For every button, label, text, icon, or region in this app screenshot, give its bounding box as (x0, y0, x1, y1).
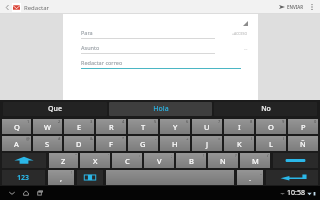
button[interactable]: Que (3, 102, 107, 116)
staticText: ! (203, 153, 205, 158)
button[interactable]: Espacio (106, 170, 234, 185)
staticText: ? (235, 153, 237, 158)
button[interactable]: Recientes (33, 186, 47, 200)
button[interactable]: Cambiar teclado (77, 170, 103, 185)
staticText: A (14, 139, 19, 149)
button[interactable]: Redactar correo (81, 59, 248, 69)
staticText: ENVIAR (287, 4, 304, 10)
button[interactable]: T (128, 119, 158, 134)
button[interactable]: P (288, 119, 318, 134)
staticText: 0 (314, 119, 317, 124)
staticText: G (140, 139, 146, 149)
button[interactable]: Mayúsculas (2, 153, 46, 168)
button[interactable]: Q (2, 119, 31, 134)
staticText: _ (260, 170, 262, 175)
button[interactable]: E (64, 119, 94, 134)
staticText: , (60, 173, 63, 183)
staticText: ( (251, 136, 253, 141)
staticText: 9 (282, 119, 285, 124)
button[interactable]: Asunto (81, 44, 248, 54)
staticText: Asunto (81, 44, 244, 51)
button[interactable]: Enviar (276, 0, 307, 14)
button[interactable]: D (64, 136, 94, 151)
button[interactable]: Intro (266, 170, 318, 185)
staticText: X (93, 156, 98, 166)
staticText: / (267, 153, 269, 158)
staticText: J (206, 139, 209, 149)
staticText: N (220, 156, 226, 166)
staticText: 2 (58, 119, 61, 124)
staticText: U (204, 122, 210, 132)
button[interactable]: 123 (2, 170, 45, 185)
button[interactable]: V (144, 153, 174, 168)
staticText: M (252, 156, 259, 166)
staticText: @ (26, 136, 30, 141)
staticText: ; (171, 153, 173, 158)
button[interactable]: R (96, 119, 126, 134)
staticText: 123 (17, 173, 30, 183)
button[interactable]: Atrás (5, 186, 19, 200)
button[interactable]: L (256, 136, 286, 151)
button[interactable]: H (160, 136, 190, 151)
staticText: I (238, 122, 241, 132)
button[interactable]: F (96, 136, 126, 151)
button[interactable]: M (240, 153, 270, 168)
button[interactable]: S (33, 136, 62, 151)
button[interactable]: Para (81, 29, 248, 39)
staticText: H (172, 139, 178, 149)
staticText: No (261, 104, 271, 114)
staticText: +ACCESO (232, 31, 248, 36)
staticText: V (157, 156, 162, 166)
button[interactable]: Inicio (19, 186, 33, 200)
button[interactable]: W (33, 119, 62, 134)
button[interactable]: Más opciones (307, 0, 317, 14)
staticText: " (75, 153, 77, 158)
staticText: - (155, 136, 157, 141)
staticText: L (269, 139, 273, 149)
button[interactable]: . (237, 170, 263, 185)
button[interactable]: J (192, 136, 222, 151)
staticText: E (77, 122, 82, 132)
other: Enviar (279, 4, 285, 10)
button[interactable]: N (208, 153, 238, 168)
staticText: T (141, 122, 146, 132)
button[interactable]: C (112, 153, 142, 168)
staticText: 7 (218, 119, 221, 124)
staticText: Q (14, 122, 20, 132)
button[interactable]: Y (160, 119, 190, 134)
staticText: . (249, 173, 252, 183)
staticText: Para (81, 29, 232, 36)
button[interactable]: X (80, 153, 110, 168)
staticText: Redactar correo (81, 59, 248, 66)
button[interactable]: K (224, 136, 254, 151)
button[interactable]: G (128, 136, 158, 151)
staticText: 5 (154, 119, 157, 124)
staticText: ) (283, 136, 285, 141)
staticText: 8 (250, 119, 253, 124)
button[interactable]: I (224, 119, 254, 134)
staticText: 4 (122, 119, 125, 124)
staticText: D (76, 139, 82, 149)
button[interactable]: O (256, 119, 286, 134)
staticText: ! (71, 170, 73, 175)
staticText: --- (244, 46, 248, 51)
staticText: C (125, 156, 130, 166)
button[interactable]: Hola (109, 102, 212, 116)
button[interactable]: Borrar (273, 153, 318, 168)
staticText: = (218, 136, 221, 141)
button[interactable]: No (214, 102, 317, 116)
staticText: Z (61, 156, 66, 166)
staticText: ' (108, 153, 109, 158)
staticText: 6 (186, 119, 189, 124)
staticText: 3 (90, 119, 93, 124)
button[interactable]: U (192, 119, 222, 134)
button[interactable]: , (48, 170, 74, 185)
button[interactable]: Redactar (3, 3, 52, 12)
button[interactable]: A (2, 136, 31, 151)
button[interactable]: B (176, 153, 206, 168)
button[interactable]: Z (49, 153, 78, 168)
staticText: Y (173, 122, 178, 132)
button[interactable]: Ñ (288, 136, 318, 151)
staticText: W (44, 122, 51, 132)
button[interactable]: Adjuntar (243, 21, 248, 26)
